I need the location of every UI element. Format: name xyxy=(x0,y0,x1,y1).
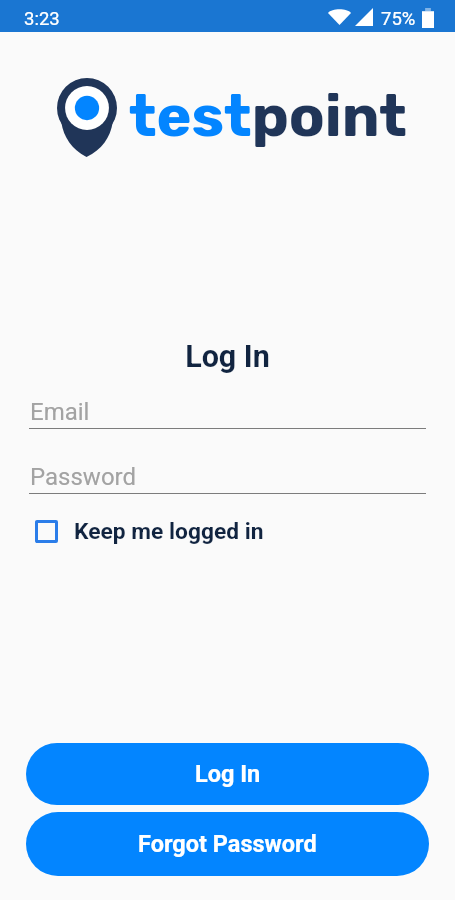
staticText: Password xyxy=(30,463,137,491)
staticText: Forgot Password xyxy=(138,830,317,858)
other: testpoint logo xyxy=(57,78,117,157)
staticText: Keep me logged in xyxy=(74,518,264,545)
staticText: Log In xyxy=(195,760,261,788)
button[interactable]: Email xyxy=(29,396,426,429)
other: Cellular signal xyxy=(355,8,373,26)
button[interactable]: Log In xyxy=(26,743,429,805)
staticText: Email xyxy=(30,398,90,426)
staticText: 75% xyxy=(381,8,416,30)
staticText: 3:23 xyxy=(24,8,60,30)
staticText: testpoint xyxy=(129,81,407,151)
other: Battery 75 percent xyxy=(422,8,434,28)
other: Wi-Fi signal xyxy=(328,8,351,25)
staticText: Log In xyxy=(0,339,455,375)
button[interactable]: Forgot Password xyxy=(26,812,429,876)
button[interactable]: Password xyxy=(29,461,426,494)
button[interactable]: Keep me logged in xyxy=(35,518,264,545)
